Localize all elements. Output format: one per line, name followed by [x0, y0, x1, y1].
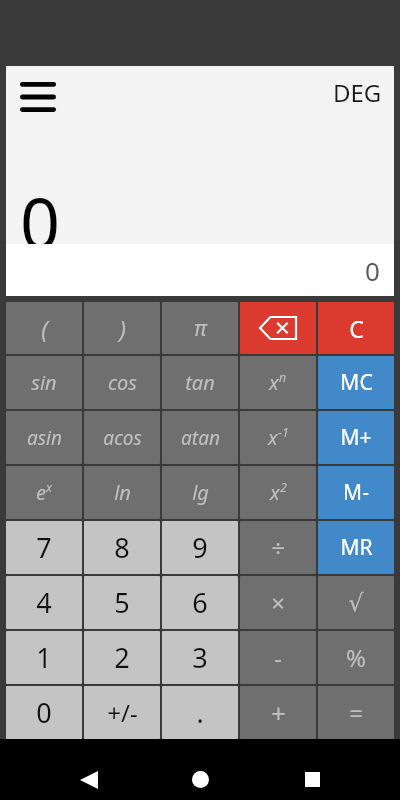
button[interactable]: MC	[318, 356, 394, 409]
staticText: .	[196, 694, 204, 731]
button[interactable]: Home	[177, 759, 223, 800]
staticText: lg	[192, 479, 209, 506]
staticText: x	[46, 479, 52, 496]
button[interactable]: =	[318, 686, 394, 739]
button[interactable]: DEG	[333, 76, 382, 109]
staticText: √	[348, 589, 364, 617]
button[interactable]: sin	[6, 356, 82, 409]
staticText: 2	[280, 479, 287, 496]
staticText: atan	[181, 425, 220, 451]
staticText: cos	[108, 369, 137, 396]
staticText: ÷	[271, 531, 285, 564]
staticText: 1	[36, 639, 52, 676]
button[interactable]: 1	[6, 631, 82, 684]
staticText: 6	[192, 584, 208, 621]
button[interactable]: +/-	[84, 686, 160, 739]
button[interactable]: .	[162, 686, 238, 739]
staticText: 0	[365, 253, 380, 288]
button[interactable]: x	[240, 466, 316, 519]
staticText: )	[119, 313, 126, 344]
button[interactable]: tan	[162, 356, 238, 409]
staticText: 9	[192, 529, 208, 566]
staticText: x	[268, 424, 278, 451]
button[interactable]: 0	[6, 686, 82, 739]
button[interactable]: 5	[84, 576, 160, 629]
button[interactable]: ×	[240, 576, 316, 629]
staticText: +	[271, 695, 286, 730]
button[interactable]: MR	[318, 521, 394, 574]
button[interactable]: )	[84, 302, 160, 354]
button[interactable]: 7	[6, 521, 82, 574]
button[interactable]: Menu	[20, 82, 56, 112]
staticText: 4	[36, 584, 52, 621]
staticText: asin	[27, 425, 62, 451]
staticText: (	[41, 313, 48, 344]
staticText: 7	[36, 529, 52, 566]
button[interactable]: atan	[162, 411, 238, 464]
button[interactable]: 8	[84, 521, 160, 574]
staticText: %	[346, 641, 366, 674]
button[interactable]: 6	[162, 576, 238, 629]
staticText: x	[269, 369, 279, 396]
button[interactable]: C	[318, 302, 394, 354]
button[interactable]: +	[240, 686, 316, 739]
button[interactable]: x	[240, 356, 316, 409]
staticText: MC	[340, 368, 373, 397]
staticText: π	[194, 314, 207, 343]
staticText: M+	[340, 423, 372, 452]
button[interactable]: x	[240, 411, 316, 464]
staticText: MR	[340, 533, 373, 562]
button[interactable]: 2	[84, 631, 160, 684]
button[interactable]: cos	[84, 356, 160, 409]
button[interactable]: acos	[84, 411, 160, 464]
staticText: 2	[114, 639, 130, 676]
staticText: ×	[271, 586, 285, 619]
button[interactable]: e	[6, 466, 82, 519]
staticText: =	[349, 696, 363, 729]
staticText: tan	[185, 369, 215, 396]
staticText: +/-	[107, 696, 138, 729]
staticText: 0	[36, 694, 52, 731]
staticText: e	[36, 479, 46, 506]
button[interactable]: -	[240, 631, 316, 684]
button[interactable]: (	[6, 302, 82, 354]
button[interactable]: lg	[162, 466, 238, 519]
button[interactable]: 3	[162, 631, 238, 684]
staticText: 8	[114, 529, 130, 566]
button[interactable]: 4	[6, 576, 82, 629]
button[interactable]: ln	[84, 466, 160, 519]
button[interactable]: asin	[6, 411, 82, 464]
button[interactable]: Recent apps	[289, 759, 335, 800]
staticText: M-	[343, 478, 369, 507]
button[interactable]: 9	[162, 521, 238, 574]
staticText: -1	[278, 424, 289, 441]
staticText: C	[349, 313, 364, 344]
button[interactable]: %	[318, 631, 394, 684]
staticText: 5	[114, 584, 130, 621]
staticText: DEG	[333, 76, 382, 109]
button[interactable]: M-	[318, 466, 394, 519]
staticText: -	[274, 641, 282, 674]
button[interactable]: √	[318, 576, 394, 629]
button[interactable]: ÷	[240, 521, 316, 574]
button[interactable]: Back	[66, 759, 112, 800]
button[interactable]: π	[162, 302, 238, 354]
staticText: acos	[103, 425, 142, 451]
staticText: ln	[114, 479, 131, 506]
staticText: sin	[31, 369, 57, 396]
staticText: n	[279, 369, 287, 386]
staticText: 0	[20, 174, 61, 244]
staticText: x	[270, 479, 280, 506]
staticText: 3	[192, 639, 208, 676]
button[interactable]: Delete	[240, 302, 316, 354]
button[interactable]: M+	[318, 411, 394, 464]
